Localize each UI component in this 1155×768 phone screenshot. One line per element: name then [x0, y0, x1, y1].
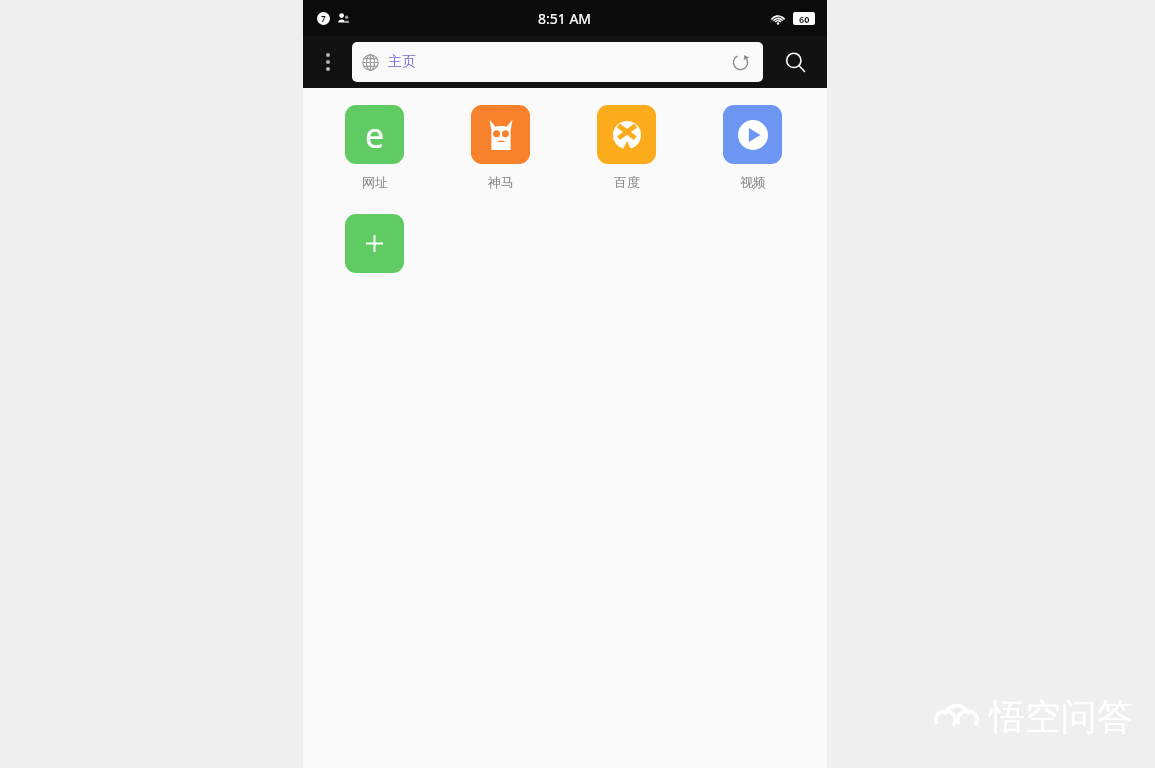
button[interactable]: e	[345, 105, 471, 190]
staticText: 悟空问答	[989, 694, 1133, 739]
button[interactable]: 神马	[471, 105, 597, 190]
button[interactable]: 视频	[723, 105, 827, 190]
button[interactable]: Refresh	[727, 49, 753, 75]
staticText: 8:51 AM	[538, 9, 592, 28]
staticText: 神马	[488, 174, 514, 190]
button[interactable]: 百度	[597, 105, 723, 190]
staticText: 网址	[362, 174, 388, 190]
staticText: 视频	[740, 174, 766, 190]
staticText: 60	[799, 13, 810, 25]
button[interactable]: Search	[763, 36, 827, 88]
staticText: e	[365, 112, 385, 158]
button[interactable]: Add shortcut	[345, 214, 471, 273]
button[interactable]: More options	[303, 36, 352, 88]
staticText: 百度	[614, 174, 640, 190]
staticText: 7	[321, 13, 326, 24]
button[interactable]: 主页	[352, 42, 763, 82]
staticText: 主页	[388, 53, 727, 71]
